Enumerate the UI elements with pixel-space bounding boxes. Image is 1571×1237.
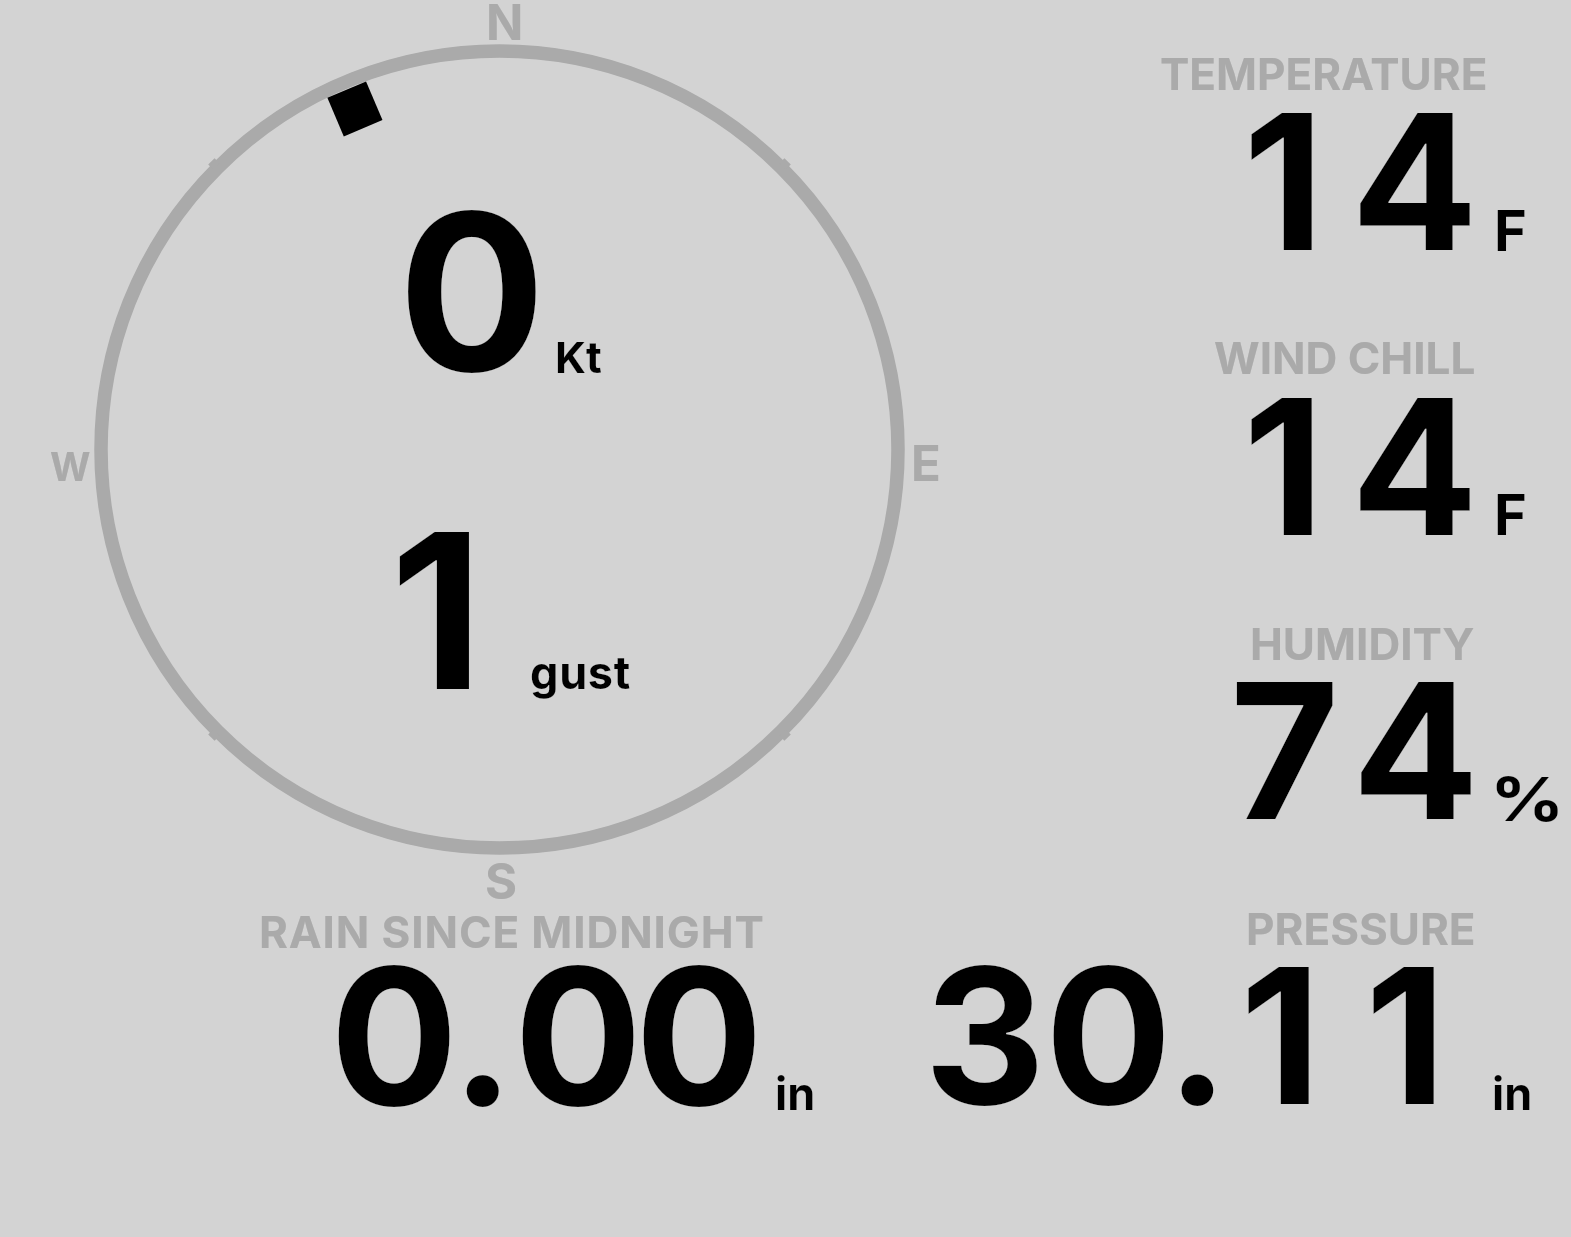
staticText: in	[775, 1066, 816, 1120]
staticText: in	[1492, 1066, 1533, 1120]
button[interactable]: Temperature, 14 degrees Fahrenheit	[1100, 40, 1571, 265]
staticText: 1	[1243, 68, 1325, 295]
staticText: 0	[398, 159, 546, 424]
staticText: S	[485, 852, 518, 911]
button[interactable]: Rain since midnight, 0.00 inches	[240, 900, 830, 1120]
button[interactable]: Pressure, 30.11 inches	[900, 900, 1540, 1120]
button[interactable]: Wind direction and speed, 0 knots, gusti…	[90, 40, 910, 860]
staticText: HUMIDITY	[1250, 617, 1475, 670]
staticText: TEMPERATURE	[1160, 47, 1488, 100]
staticText: 7	[1230, 637, 1340, 864]
button[interactable]: Humidity, 74 percent	[1100, 610, 1571, 835]
staticText: 3	[924, 922, 1046, 1149]
staticText: 4	[1351, 68, 1479, 295]
staticText: 1	[1365, 922, 1447, 1149]
staticText: 4	[1352, 637, 1480, 864]
staticText: 1	[1240, 922, 1322, 1149]
staticText: RAIN SINCE MIDNIGHT	[259, 905, 765, 958]
staticText: gust	[530, 645, 631, 699]
staticText: WIND CHILL	[1214, 331, 1476, 384]
button[interactable]: Wind chill, 14 degrees Fahrenheit	[1100, 325, 1571, 550]
staticText: 1	[390, 480, 484, 741]
staticText: E	[911, 434, 941, 493]
staticText: Kt	[555, 331, 602, 383]
staticText: 0	[514, 921, 643, 1151]
staticText: F	[1494, 481, 1527, 549]
staticText: F	[1494, 197, 1527, 265]
staticText: N	[486, 0, 524, 52]
staticText: 0	[330, 921, 459, 1151]
staticText: 4	[1351, 353, 1479, 580]
staticText: .	[1166, 922, 1229, 1149]
staticText: 1	[1243, 353, 1325, 580]
staticText: W	[50, 443, 91, 490]
staticText: 0	[1045, 922, 1172, 1149]
staticText: %	[1490, 762, 1564, 836]
staticText: .	[451, 921, 515, 1151]
staticText: 0	[635, 921, 764, 1151]
staticText: PRESSURE	[1246, 902, 1476, 955]
